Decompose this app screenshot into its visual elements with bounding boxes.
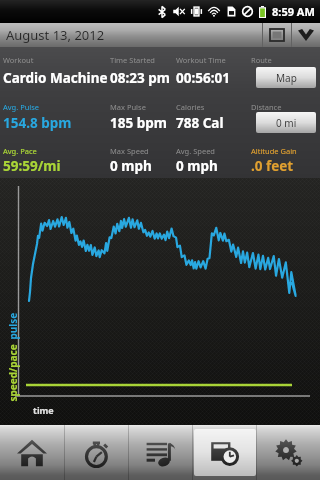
staticText: time bbox=[33, 404, 54, 416]
staticText: 788 Cal bbox=[176, 114, 224, 132]
button[interactable]: Map bbox=[256, 67, 316, 88]
staticText: 08:23 pm bbox=[110, 69, 170, 87]
staticText: 00:56:01 bbox=[176, 69, 230, 87]
staticText: Cardio Machine bbox=[3, 69, 108, 87]
staticText: speed/pace bbox=[5, 343, 19, 401]
staticText: August 13, 2012 bbox=[6, 26, 105, 44]
staticText: Route bbox=[251, 55, 272, 65]
button[interactable]: History bbox=[193, 425, 256, 480]
staticText: Calories bbox=[176, 102, 205, 112]
button[interactable]: Display mode bbox=[263, 23, 291, 47]
button[interactable]: Stopwatch bbox=[65, 425, 128, 480]
staticText: Avg. Pace bbox=[3, 146, 37, 156]
staticText: Max Pulse bbox=[110, 102, 146, 112]
staticText: Workout bbox=[3, 55, 34, 65]
staticText: 8:59 AM bbox=[272, 4, 315, 19]
button[interactable]: Settings bbox=[257, 425, 320, 480]
button[interactable]: App menu bbox=[292, 23, 320, 47]
staticText: .0 feet bbox=[251, 157, 294, 175]
staticText: Map bbox=[276, 71, 297, 85]
staticText: Max Speed bbox=[110, 146, 149, 156]
button[interactable]: 0 mi bbox=[256, 112, 316, 133]
staticText: 0 mph bbox=[176, 157, 218, 175]
staticText: 0 mph bbox=[110, 157, 152, 175]
staticText: pulse bbox=[5, 312, 19, 339]
staticText: 0 mi bbox=[276, 116, 297, 130]
staticText: Workout Time bbox=[176, 55, 226, 65]
staticText: Distance bbox=[251, 102, 282, 112]
staticText: Time Started bbox=[110, 55, 155, 65]
staticText: 59:59/mi bbox=[3, 157, 61, 175]
staticText: 185 bpm bbox=[110, 114, 167, 132]
staticText: Avg. Speed bbox=[176, 146, 215, 156]
staticText: Avg. Pulse bbox=[3, 102, 40, 112]
button[interactable]: Home bbox=[0, 425, 64, 480]
button[interactable]: Music bbox=[129, 425, 192, 480]
staticText: Altitude Gain bbox=[251, 146, 297, 156]
staticText: 154.8 bpm bbox=[3, 114, 72, 132]
